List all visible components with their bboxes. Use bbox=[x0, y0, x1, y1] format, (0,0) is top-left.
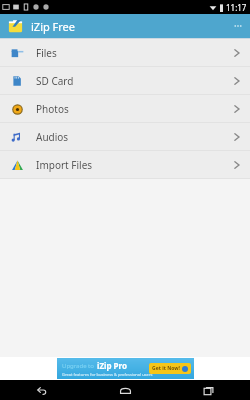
staticText: Photos bbox=[36, 102, 69, 116]
staticText: Get it Now! bbox=[152, 365, 180, 372]
button[interactable]: Get it Now! bbox=[149, 363, 191, 374]
button[interactable]: Files bbox=[0, 39, 250, 66]
button[interactable]: Recent apps bbox=[167, 380, 250, 400]
button[interactable]: SD Card bbox=[0, 67, 250, 94]
staticText: Import Files bbox=[36, 158, 93, 172]
staticText: 11:17 bbox=[226, 2, 247, 13]
staticText: SD Card bbox=[36, 74, 74, 88]
button[interactable]: Import Files bbox=[0, 151, 250, 178]
staticText: iZip Pro bbox=[97, 360, 127, 371]
staticText: Audios bbox=[36, 130, 69, 144]
button[interactable]: Audios bbox=[0, 123, 250, 150]
button[interactable]: Photos bbox=[0, 95, 250, 122]
button[interactable]: Upgrade to bbox=[57, 358, 194, 379]
staticText: Upgrade to bbox=[62, 362, 94, 370]
button[interactable]: Back bbox=[0, 380, 84, 400]
staticText: Great features for business & profession… bbox=[62, 372, 153, 377]
staticText: Files bbox=[36, 46, 57, 60]
button[interactable]: More options bbox=[226, 14, 250, 38]
staticText: iZip Free bbox=[31, 19, 76, 34]
button[interactable]: Home bbox=[84, 380, 167, 400]
